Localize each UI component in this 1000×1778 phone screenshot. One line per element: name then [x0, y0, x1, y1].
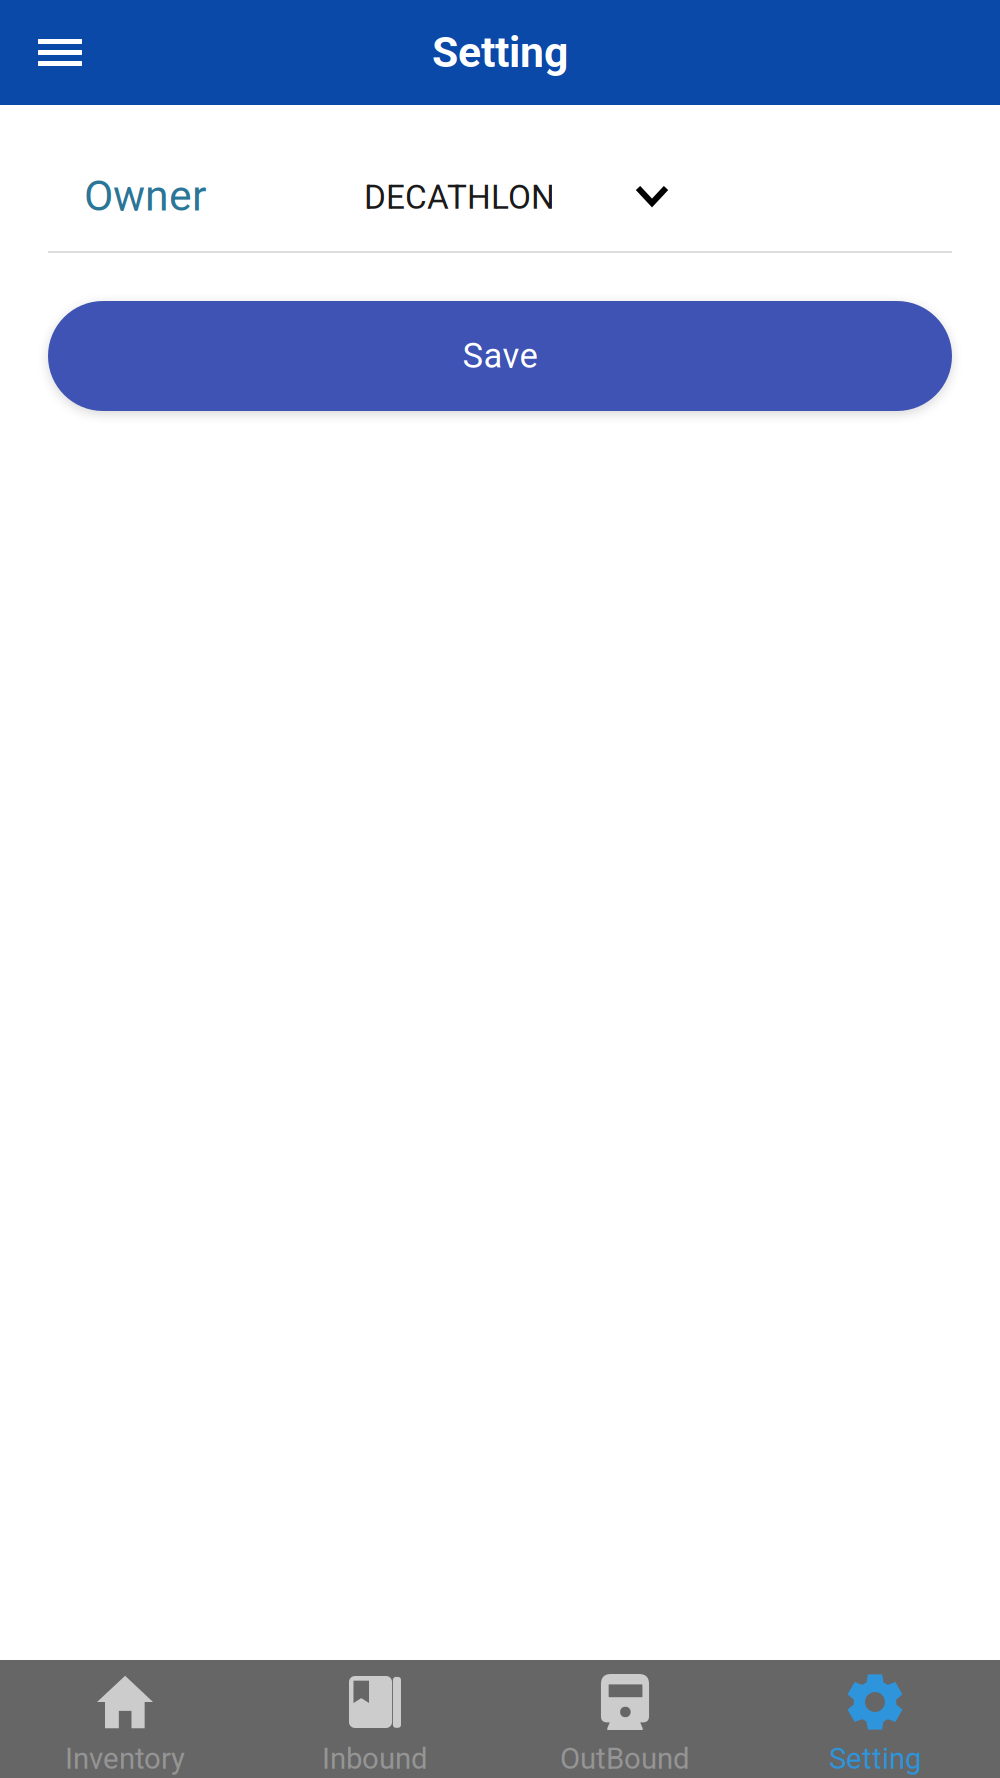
button[interactable]: Setting — [750, 1660, 1000, 1778]
staticText: OutBound — [560, 1742, 690, 1776]
button[interactable]: Owner — [0, 105, 1000, 251]
staticText: DECATHLON — [364, 178, 555, 217]
staticText: Setting — [432, 27, 568, 77]
staticText: Inbound — [322, 1742, 428, 1776]
staticText: Save — [462, 336, 537, 376]
button[interactable]: Save — [48, 301, 952, 411]
staticText: Setting — [829, 1742, 921, 1776]
staticText: Inventory — [65, 1742, 185, 1776]
button[interactable]: OutBound — [500, 1660, 750, 1778]
button[interactable]: Inventory — [0, 1660, 250, 1778]
button[interactable]: Menu — [0, 0, 106, 105]
staticText: Owner — [84, 171, 206, 221]
button[interactable]: Inbound — [250, 1660, 500, 1778]
